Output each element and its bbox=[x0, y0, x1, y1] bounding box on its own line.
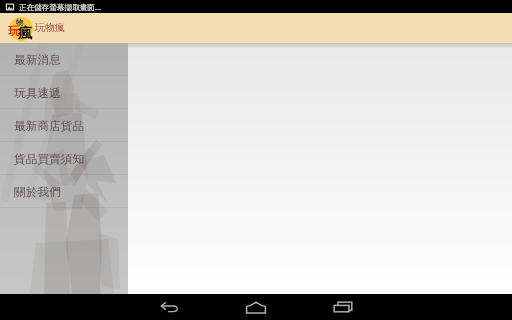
staticText: 最新消息 bbox=[14, 53, 61, 68]
staticText: 關於我們 bbox=[14, 185, 61, 200]
staticText: 玩具速遞 bbox=[14, 86, 61, 101]
staticText: 玩 bbox=[8, 24, 20, 38]
button[interactable]: Recent apps bbox=[325, 294, 361, 320]
staticText: 玩物瘋 bbox=[35, 21, 65, 34]
staticText: 物 bbox=[16, 18, 24, 27]
button[interactable]: 玩具速遞 bbox=[0, 76, 128, 109]
staticText: 正在儲存螢幕擷取畫面... bbox=[19, 2, 102, 12]
button[interactable]: 最新消息 bbox=[0, 43, 128, 76]
staticText: 瘋 bbox=[18, 24, 33, 42]
staticText: 貨品買賣須知 bbox=[14, 152, 85, 167]
staticText: 最新商店貨品 bbox=[14, 119, 85, 134]
button[interactable]: 貨品買賣須知 bbox=[0, 142, 128, 175]
button[interactable]: 最新商店貨品 bbox=[0, 109, 128, 142]
button[interactable]: Home bbox=[238, 294, 274, 320]
button[interactable]: Back bbox=[152, 294, 187, 320]
button[interactable]: 關於我們 bbox=[0, 175, 128, 208]
